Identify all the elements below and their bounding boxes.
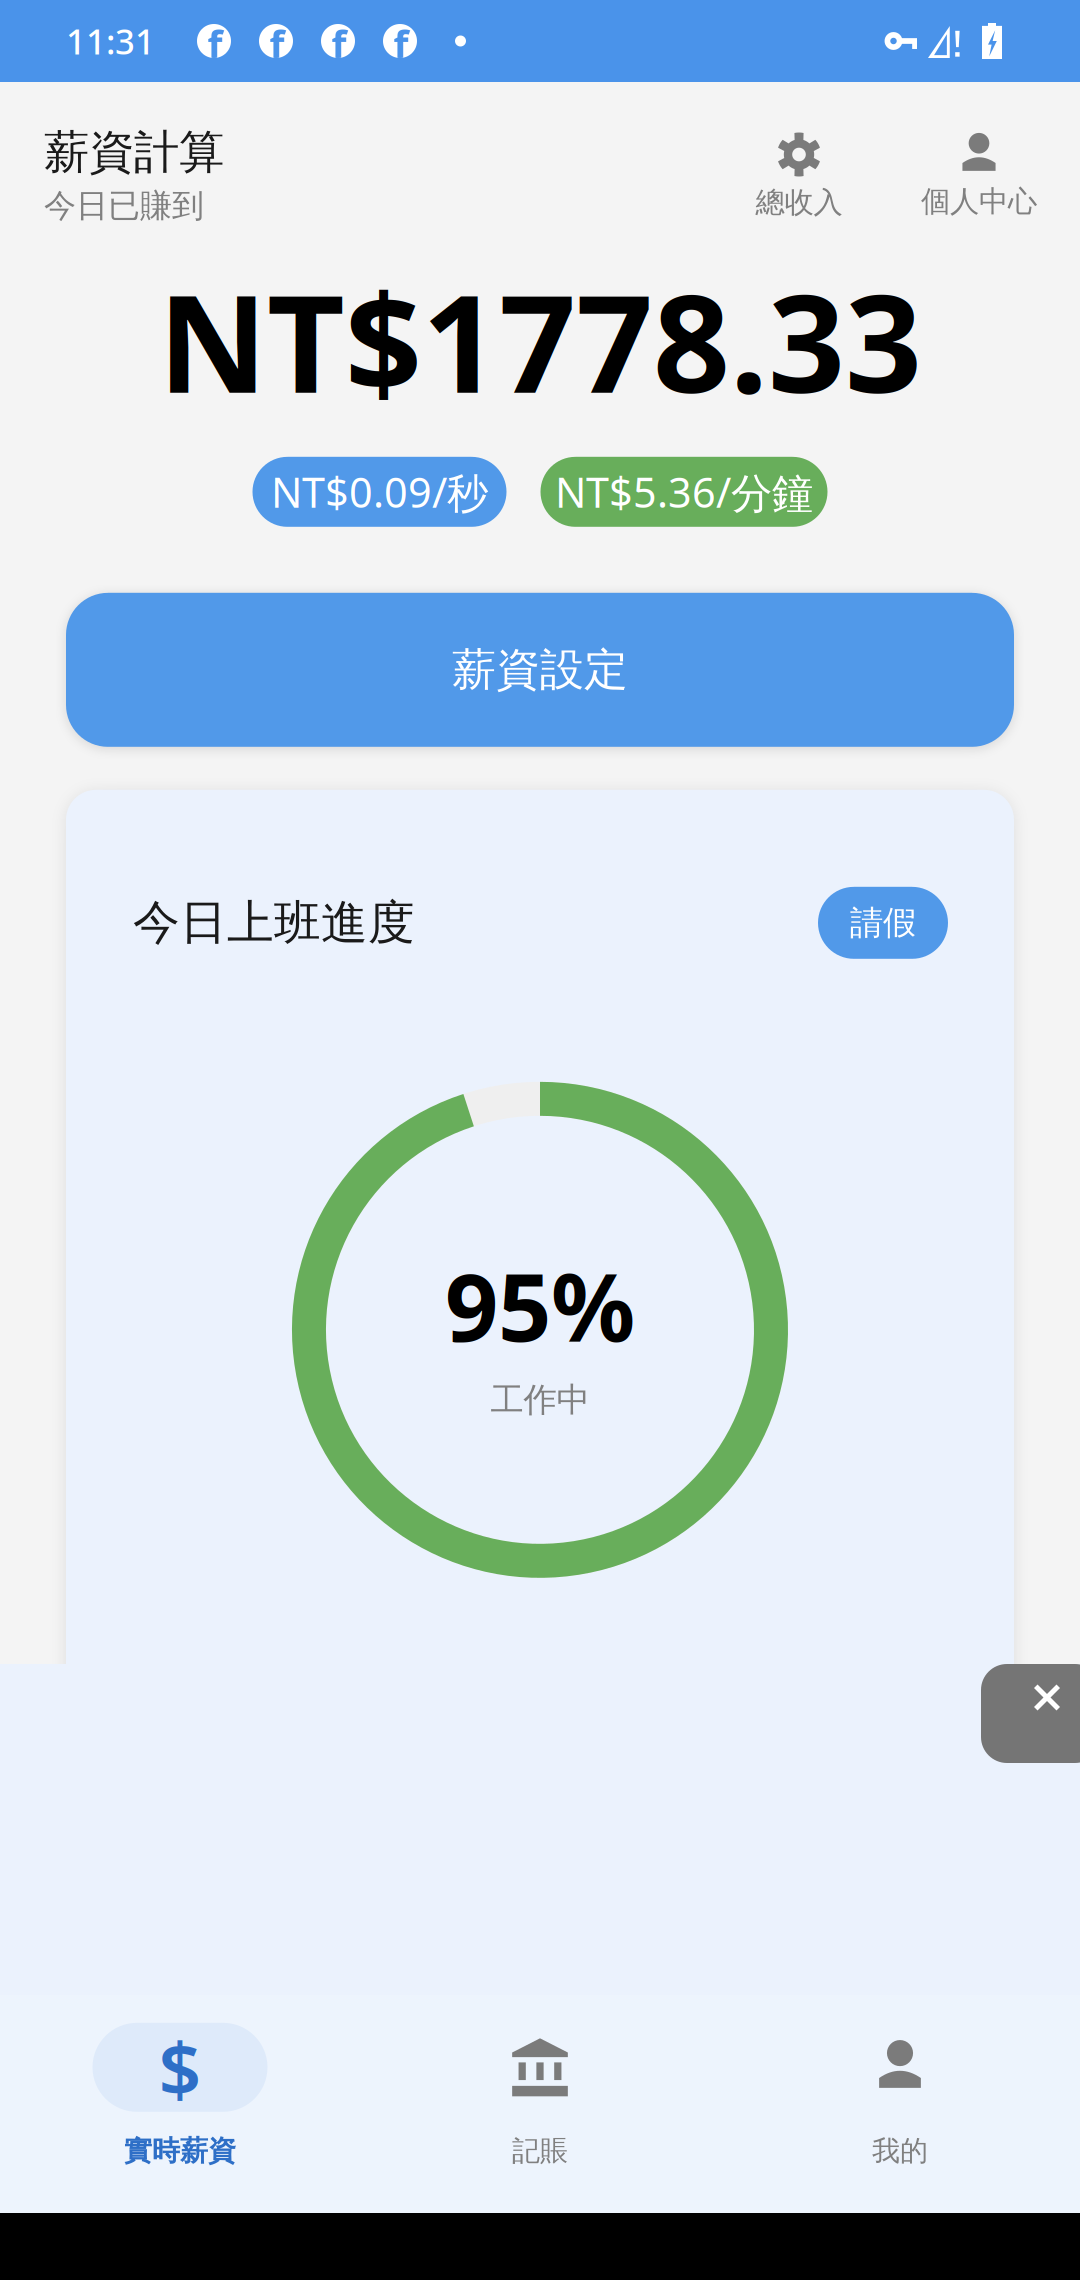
staticText: 個人中心 (921, 183, 1037, 219)
staticText: 薪資設定 (452, 643, 628, 697)
staticText: 今日上班進度 (133, 894, 415, 951)
staticText: 95% (445, 1243, 635, 1367)
staticText: 11:31 (66, 18, 155, 64)
staticText: 我的 (872, 2134, 928, 2168)
staticText: NT$0.09/秒 (271, 464, 488, 519)
button[interactable]: 我的 (720, 1992, 1080, 2216)
staticText: $ (158, 2018, 201, 2117)
staticText: NT$5.36/分鐘 (555, 464, 813, 519)
button[interactable]: 薪資設定 (66, 593, 1014, 747)
staticText: 實時薪資 (124, 2134, 236, 2168)
button[interactable]: Close advertisement (960, 1664, 1080, 1763)
staticText: f (269, 19, 284, 70)
staticText: f (331, 19, 346, 70)
staticText: 請假 (850, 902, 916, 943)
staticText: f (393, 19, 408, 70)
staticText: f (207, 19, 222, 70)
staticText: 薪資計算 (44, 124, 224, 180)
staticText: 工作中 (490, 1379, 589, 1420)
button[interactable]: 請假 (818, 887, 948, 959)
staticText: 記賬 (512, 2134, 568, 2168)
staticText: NT$1778.33 (158, 251, 922, 430)
button[interactable]: 總收入 (714, 98, 884, 220)
button[interactable]: 記賬 (360, 1992, 720, 2216)
staticText: 今日已賺到 (44, 186, 204, 225)
button[interactable]: 個人中心 (884, 98, 1074, 219)
button[interactable]: $ (0, 1992, 360, 2216)
staticText: 總收入 (755, 184, 842, 220)
